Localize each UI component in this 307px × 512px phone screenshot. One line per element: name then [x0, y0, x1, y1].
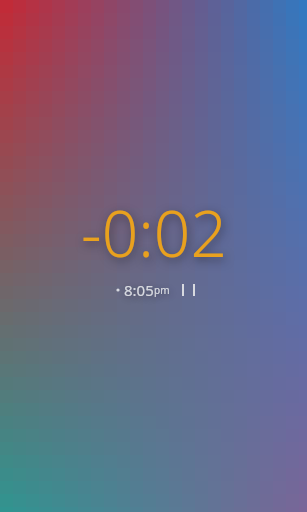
staticText: 8:05: [124, 280, 154, 300]
staticText: pm: [154, 283, 170, 297]
button[interactable]: -0:02: [81, 189, 227, 300]
button[interactable]: Pause: [182, 284, 195, 296]
staticText: -0:02: [81, 189, 227, 276]
button[interactable]: -0:02: [0, 0, 307, 512]
